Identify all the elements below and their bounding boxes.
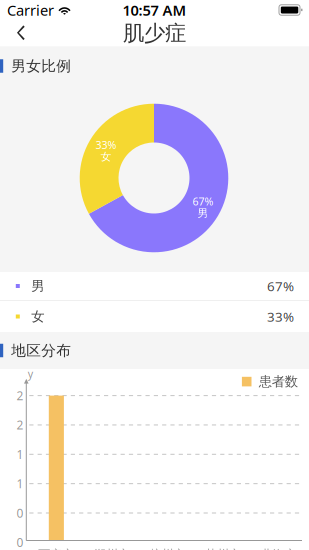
staticText: 67% — [267, 277, 294, 295]
staticText: 西安市 — [38, 547, 74, 550]
staticText: 67% — [192, 194, 213, 209]
staticText: Carrier — [7, 0, 54, 20]
staticText: 33% — [95, 138, 116, 152]
staticText: 2 — [16, 417, 23, 433]
button[interactable]: 女 — [0, 301, 309, 332]
staticText: 0 — [16, 534, 23, 550]
staticText: y — [28, 366, 33, 381]
staticText: 2 — [16, 388, 23, 403]
staticText: 1 — [16, 476, 23, 492]
staticText: 患者数 — [259, 373, 298, 390]
staticText: 男 — [197, 206, 208, 220]
staticText: 1 — [16, 446, 23, 462]
staticText: 0 — [16, 505, 23, 521]
button[interactable]: 男 — [0, 272, 309, 301]
staticText: 10:57 AM — [122, 0, 186, 20]
button[interactable]: Back — [3, 19, 37, 47]
staticText: 男女比例 — [11, 57, 71, 75]
staticText: 杭州市 — [149, 547, 185, 550]
staticText: 女 — [100, 150, 111, 163]
staticText: 苏州市 — [205, 547, 241, 550]
staticText: 地区分布 — [11, 341, 71, 359]
staticText: 33% — [267, 308, 294, 325]
staticText: 女 — [31, 308, 44, 325]
staticText: 郑州市 — [94, 547, 130, 550]
staticText: 肌少症 — [123, 20, 186, 46]
staticText: 北海市 — [261, 547, 297, 550]
staticText: 男 — [31, 278, 44, 294]
